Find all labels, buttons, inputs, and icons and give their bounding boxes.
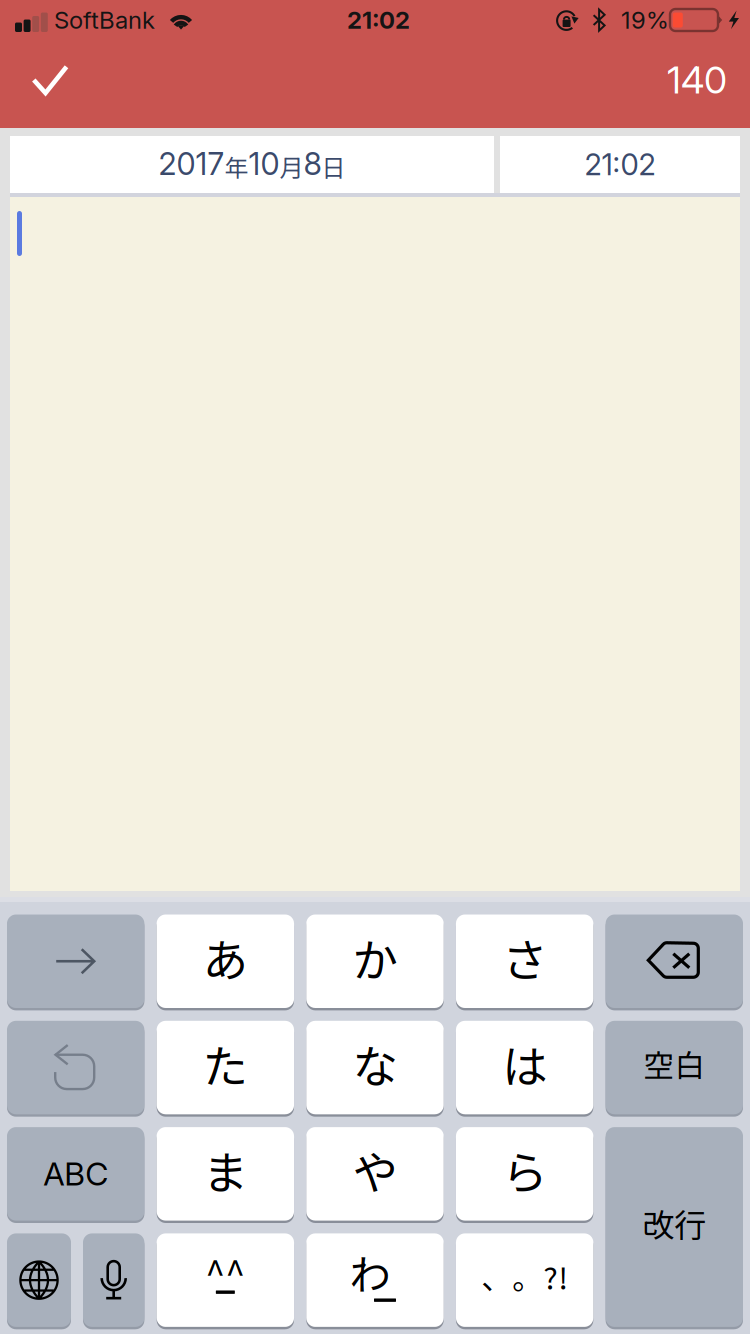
button[interactable] — [7, 913, 144, 1009]
staticText: た — [203, 1031, 248, 1096]
button[interactable]: か — [306, 913, 444, 1009]
button[interactable]: 空白 — [606, 1019, 743, 1116]
button[interactable]: 2017年10月8日 — [10, 136, 494, 193]
staticText: あ — [203, 924, 248, 990]
button[interactable] — [7, 1232, 71, 1328]
staticText: ら — [502, 1137, 547, 1203]
staticText: ^^ — [205, 1245, 245, 1297]
staticText: 改行 — [642, 1200, 706, 1246]
button[interactable]: ま — [157, 1126, 294, 1222]
button[interactable]: は — [456, 1019, 593, 1116]
button[interactable]: 改行 — [606, 1126, 743, 1328]
staticText: 21:02 — [584, 147, 655, 182]
button[interactable]: ら — [456, 1126, 593, 1222]
staticText: 空白 — [643, 1041, 705, 1086]
staticText: 21:02 — [347, 5, 410, 34]
button[interactable]: さ — [456, 913, 593, 1009]
button[interactable]: 21:02 — [500, 136, 740, 193]
staticText: SoftBank — [54, 5, 155, 34]
staticText: 2017年10月8日 — [158, 146, 345, 183]
staticText: さ — [502, 924, 547, 990]
button[interactable]: な — [306, 1019, 444, 1116]
staticText: な — [352, 1031, 397, 1096]
button[interactable] — [83, 1232, 144, 1328]
staticText: 19% — [621, 5, 669, 34]
staticText: 140 — [667, 57, 727, 103]
button[interactable]: ^^ — [157, 1232, 294, 1328]
staticText: か — [352, 924, 397, 990]
staticText: 、。?! — [481, 1254, 568, 1298]
button[interactable]: 、。?! — [456, 1232, 593, 1328]
button[interactable]: ABC — [7, 1126, 144, 1222]
staticText: は — [502, 1031, 547, 1096]
button[interactable] — [606, 913, 743, 1009]
button[interactable]: Save note — [8, 38, 92, 122]
button[interactable]: 140 — [587, 38, 727, 122]
staticText: や — [352, 1137, 397, 1203]
staticText: ま — [203, 1137, 248, 1203]
staticText: ABC — [43, 1154, 108, 1193]
staticText: わ — [349, 1242, 390, 1302]
button[interactable]: あ — [157, 913, 294, 1009]
button[interactable]: わ — [306, 1232, 444, 1328]
button[interactable] — [7, 1019, 144, 1116]
button[interactable]: た — [157, 1019, 294, 1116]
button[interactable]: や — [306, 1126, 444, 1222]
